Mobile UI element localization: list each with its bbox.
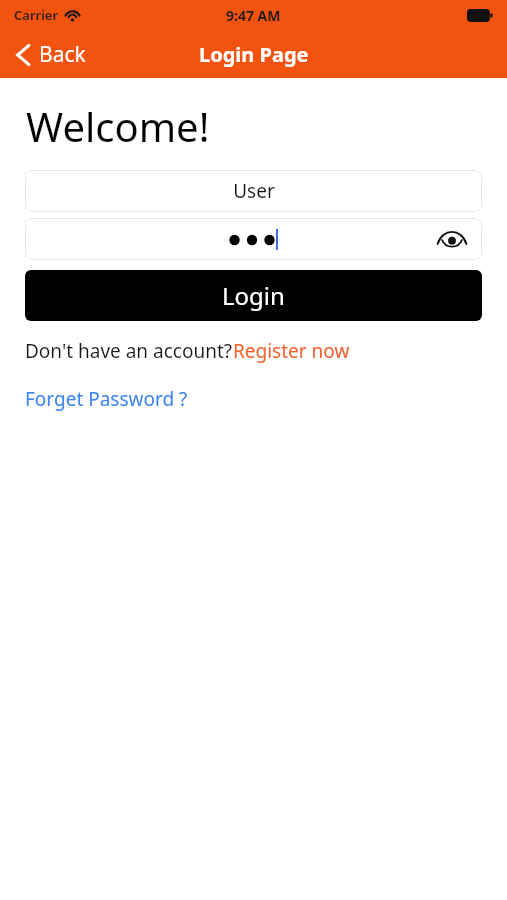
staticText: Register now bbox=[233, 338, 350, 364]
staticText: Login Page bbox=[199, 41, 309, 68]
staticText: Forget Password ? bbox=[25, 386, 188, 412]
staticText: Don't have an account? bbox=[25, 338, 233, 364]
button[interactable]: User bbox=[25, 170, 482, 212]
staticText: Welcome! bbox=[26, 99, 210, 153]
staticText: Carrier bbox=[14, 6, 59, 24]
staticText: Back bbox=[39, 40, 86, 69]
staticText: 9:47 AM bbox=[226, 6, 281, 25]
button[interactable]: Show password bbox=[433, 220, 471, 258]
button[interactable]: Register now bbox=[233, 338, 350, 364]
staticText: User bbox=[233, 178, 275, 204]
button[interactable]: Login bbox=[25, 270, 482, 321]
button[interactable]: Show password bbox=[25, 218, 482, 260]
button[interactable]: Back bbox=[0, 36, 98, 73]
staticText: Login bbox=[222, 279, 285, 312]
button[interactable]: Forget Password ? bbox=[25, 386, 188, 412]
